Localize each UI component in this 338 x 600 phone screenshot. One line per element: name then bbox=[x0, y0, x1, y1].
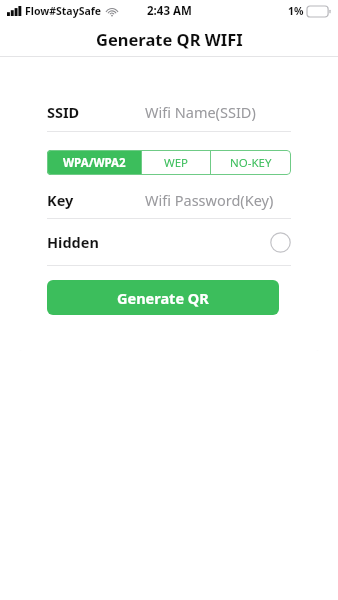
staticText: Hidden bbox=[47, 232, 99, 252]
staticText: NO-KEY bbox=[230, 155, 272, 171]
staticText: WPA/WPA2 bbox=[63, 155, 126, 171]
staticText: Key bbox=[47, 190, 74, 210]
staticText: Generate QR WIFI bbox=[96, 28, 243, 50]
button[interactable]: Key bbox=[47, 189, 291, 211]
staticText: Wifi Password(Key) bbox=[145, 190, 274, 210]
button[interactable]: SSID bbox=[47, 101, 291, 123]
button[interactable]: Generate QR bbox=[47, 280, 279, 315]
button[interactable]: Hidden bbox=[47, 219, 291, 265]
staticText: Flow#StaySafe bbox=[25, 4, 102, 18]
staticText: Generate QR bbox=[117, 288, 209, 308]
staticText: 1% bbox=[288, 4, 304, 18]
staticText: SSID bbox=[47, 102, 80, 122]
staticText: Wifi Name(SSID) bbox=[145, 102, 256, 122]
staticText: 2:43 AM bbox=[147, 3, 192, 19]
other: Hidden network toggle bbox=[270, 232, 291, 253]
button[interactable]: WPA/WPA2 bbox=[47, 150, 141, 175]
button[interactable]: WEP bbox=[142, 150, 210, 175]
staticText: WEP bbox=[164, 155, 189, 171]
button[interactable]: NO-KEY bbox=[211, 150, 291, 175]
